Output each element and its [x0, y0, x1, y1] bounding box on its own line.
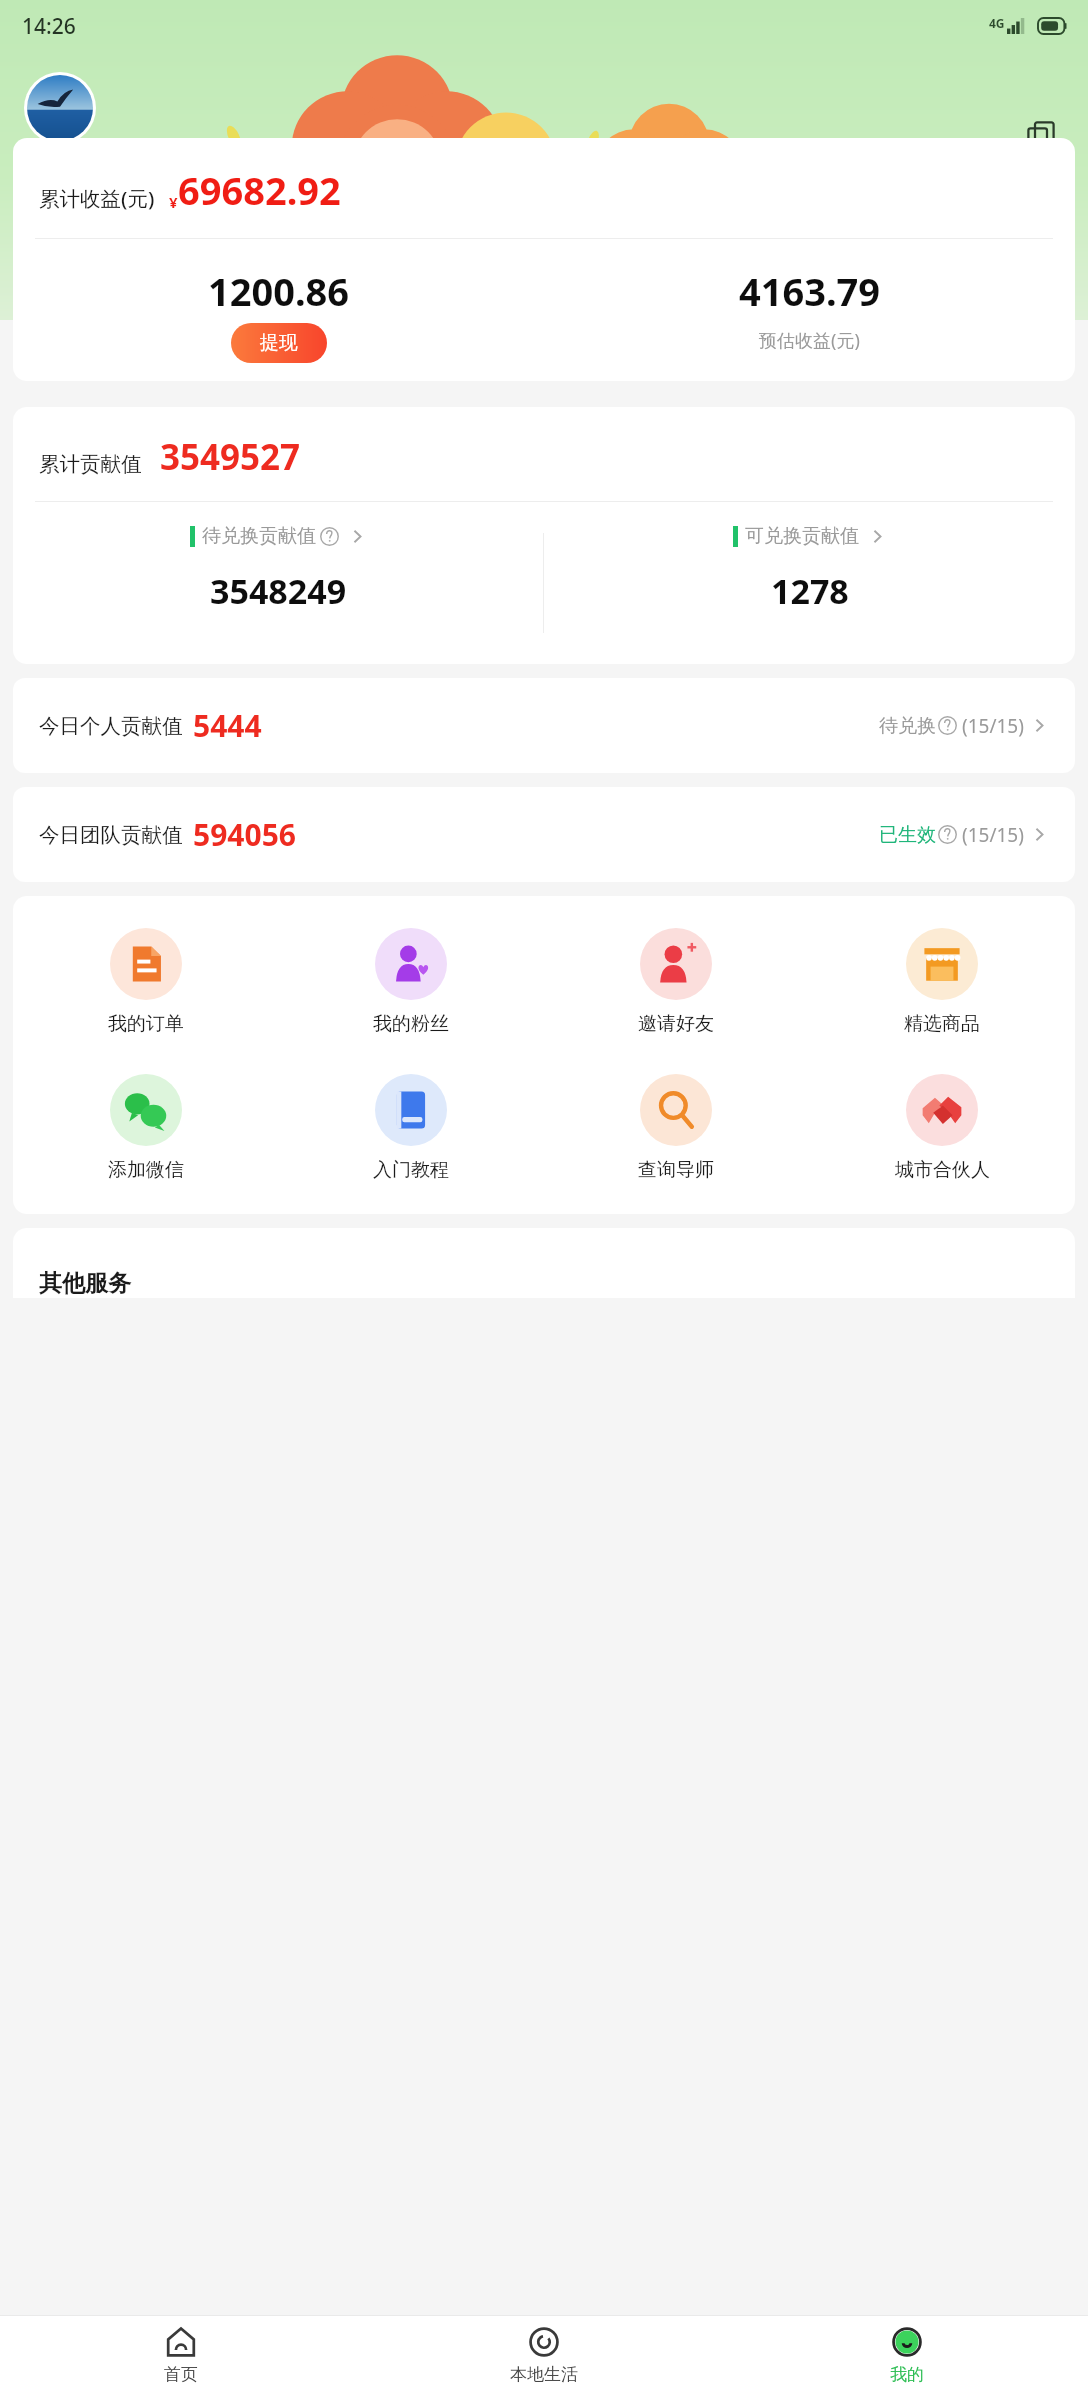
staticText: 提现 — [260, 331, 298, 355]
button[interactable]: 首页 — [0, 2316, 362, 2400]
staticText: 精选商品 — [904, 1012, 980, 1036]
staticText: 14:26 — [22, 12, 76, 41]
button[interactable]: 累计贡献值 — [13, 407, 1075, 664]
staticText: 预估收益(元) — [759, 328, 860, 353]
staticText: 4G — [989, 15, 1005, 31]
button[interactable]: 可兑换贡献值 — [544, 524, 1075, 642]
staticText: 我的粉丝 — [373, 1012, 449, 1036]
staticText: 5444 — [193, 705, 262, 746]
button[interactable]: 4163.79 — [544, 265, 1075, 353]
staticText: (15/15) — [962, 713, 1024, 739]
staticText: (15/15) — [962, 822, 1024, 848]
staticText: 已生效 — [879, 823, 936, 847]
staticText: 我的订单 — [108, 1012, 184, 1036]
staticText: 查询导师 — [638, 1158, 714, 1182]
button[interactable]: 1200.86 — [13, 265, 544, 363]
staticText: 入门教程 — [373, 1158, 449, 1182]
staticText: 城市合伙人 — [895, 1158, 990, 1182]
staticText: 首页 — [164, 2364, 198, 2385]
staticText: 添加微信 — [108, 1158, 184, 1182]
staticText: 1278 — [771, 568, 849, 614]
staticText: 4163.79 — [739, 265, 881, 317]
staticText: 其他服务 — [39, 1269, 131, 1298]
button[interactable]: 今日个人贡献值 — [13, 678, 1075, 773]
button[interactable]: 累计收益(元) — [13, 138, 1075, 381]
button[interactable]: 我的粉丝 — [278, 920, 543, 1044]
staticText: 邀请好友 — [638, 1012, 714, 1036]
button[interactable]: 今日团队贡献值 — [13, 787, 1075, 882]
button[interactable]: 城市合伙人 — [809, 1066, 1075, 1190]
staticText: 待兑换 — [879, 714, 936, 738]
staticText: 累计贡献值 — [39, 451, 142, 477]
staticText: 今日团队贡献值 — [39, 822, 183, 848]
button[interactable]: 入门教程 — [278, 1066, 543, 1190]
button[interactable]: Copy ID — [1026, 120, 1056, 150]
staticText: 我的 — [890, 2364, 924, 2385]
button[interactable]: 我的 — [725, 2316, 1088, 2400]
staticText: 今日个人贡献值 — [39, 713, 183, 739]
staticText: 可兑换贡献值 — [745, 524, 859, 548]
staticText: 69682.92 — [178, 164, 341, 216]
button[interactable]: 本地生活 — [362, 2316, 725, 2400]
staticText: 3549527 — [160, 433, 301, 481]
staticText: 594056 — [193, 814, 296, 855]
button[interactable]: 提现 — [231, 323, 327, 363]
staticText: 累计收益(元) — [39, 184, 155, 212]
button[interactable]: 查询导师 — [543, 1066, 809, 1190]
staticText: 本地生活 — [510, 2364, 578, 2385]
button[interactable]: 待兑换贡献值 — [13, 524, 543, 642]
staticText: 1200.86 — [208, 265, 350, 317]
button[interactable]: 其他服务 — [13, 1228, 1075, 1298]
staticText: 3548249 — [210, 568, 347, 614]
staticText: 待兑换贡献值 — [202, 524, 316, 548]
staticText: ¥ — [169, 192, 178, 212]
button[interactable]: 我的订单 — [13, 920, 278, 1044]
button[interactable]: Profile avatar — [24, 72, 96, 144]
button[interactable]: 邀请好友 — [543, 920, 809, 1044]
button[interactable]: 精选商品 — [809, 920, 1075, 1044]
button[interactable]: 添加微信 — [13, 1066, 278, 1190]
